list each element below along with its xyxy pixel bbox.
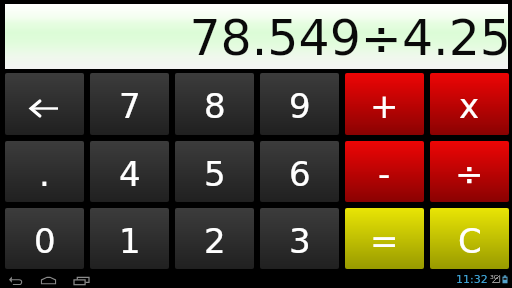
button[interactable]: Back [0, 269, 31, 288]
staticText: . [39, 154, 50, 194]
button[interactable]: 6 [260, 141, 339, 202]
button[interactable]: 2 [175, 208, 254, 269]
staticText: 2 [204, 221, 226, 261]
staticText: 11:32 [456, 273, 488, 286]
staticText: 78.549÷4.25 [189, 10, 511, 67]
button[interactable]: Home [32, 269, 64, 288]
button[interactable]: 5 [175, 141, 254, 202]
staticText: 3 [289, 221, 311, 261]
staticText: - [378, 154, 391, 194]
button[interactable]: x [430, 73, 509, 135]
button[interactable]: = [345, 208, 424, 269]
staticText: x [459, 86, 480, 126]
button[interactable]: 9 [260, 73, 339, 135]
button[interactable]: 1 [90, 208, 169, 269]
staticText: 0 [34, 221, 56, 261]
button[interactable]: 3 [260, 208, 339, 269]
button[interactable]: Backspace [5, 73, 84, 135]
staticText: ÷ [455, 154, 484, 194]
staticText: 1 [119, 221, 141, 261]
staticText: 3G [490, 273, 499, 280]
button[interactable]: ÷ [430, 141, 509, 202]
staticText: 6 [289, 154, 311, 194]
button[interactable]: 78.549÷4.25 [5, 4, 508, 69]
button[interactable]: . [5, 141, 84, 202]
button[interactable]: Recent apps [65, 269, 97, 288]
staticText: 5 [204, 154, 226, 194]
staticText: 4 [119, 154, 141, 194]
button[interactable]: 0 [5, 208, 84, 269]
staticText: 7 [119, 86, 141, 126]
button[interactable]: 8 [175, 73, 254, 135]
button[interactable]: - [345, 141, 424, 202]
staticText: + [370, 86, 399, 126]
button[interactable]: 4 [90, 141, 169, 202]
button[interactable]: 7 [90, 73, 169, 135]
button[interactable]: C [430, 208, 509, 269]
staticText: 8 [204, 86, 226, 126]
staticText: 9 [289, 86, 311, 126]
staticText: = [370, 221, 399, 261]
button[interactable]: + [345, 73, 424, 135]
staticText: C [458, 221, 482, 261]
